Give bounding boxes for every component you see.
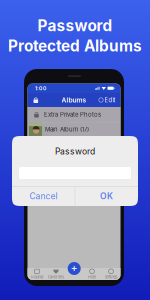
button[interactable]: Settings [101,268,120,280]
button[interactable]: Favorites [46,268,65,280]
staticText: Edit [104,96,115,104]
button[interactable]: Extra Private Photos [27,107,120,122]
staticText: Password [55,146,95,157]
staticText: Cancel [29,191,57,201]
button[interactable]: Main Album (17) [27,122,120,136]
button[interactable]: Edit [97,93,117,107]
staticText: 1:00 [35,85,47,91]
staticText: Hide [88,275,96,279]
button[interactable]: OK [75,186,138,206]
staticText: Password [37,16,112,35]
staticText: OK [100,191,113,201]
staticText: Main Album (17) [45,126,89,133]
button[interactable]: Locked albums [30,94,41,106]
button[interactable]: New album [68,262,81,275]
button[interactable]: Cancel [12,186,75,206]
button[interactable]: Albums [27,268,46,280]
staticText: Settings [104,275,117,279]
staticText: Protected Albums [8,37,142,55]
staticText: Favorites [48,275,64,279]
staticText: Albums [61,96,86,104]
button[interactable]: Hide [82,268,101,280]
staticText: Albums [30,275,43,279]
staticText: Extra Private Photos [44,111,101,118]
